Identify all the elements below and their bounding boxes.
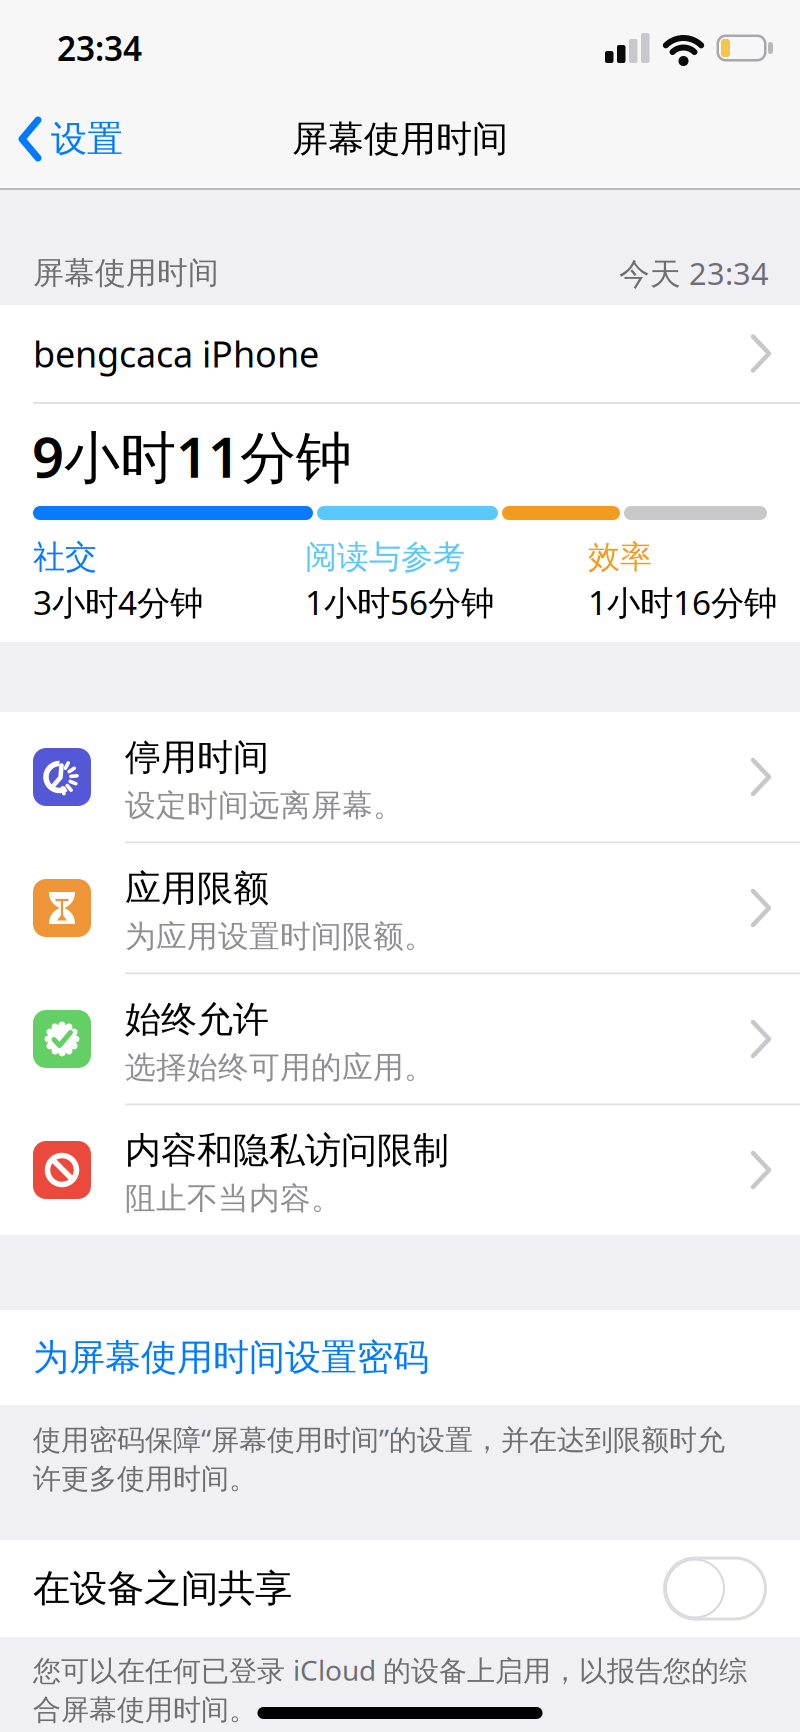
button[interactable]: 内容和隐私访问限制 [0, 1105, 800, 1234]
staticText: 您可以在任何已登录 iCloud 的设备上启用，以报告您的综 [33, 1651, 747, 1689]
staticText: 合屏幕使用时间。 [33, 1693, 257, 1727]
button[interactable]: 停用时间 [0, 712, 800, 841]
staticText: 为应用设置时间限额。 [125, 918, 435, 955]
button[interactable]: 始终允许 [0, 974, 800, 1103]
staticText: 使用密码保障“屏幕使用时间”的设置，并在达到限额时允 [33, 1420, 725, 1458]
staticText: 1小时56分钟 [305, 580, 494, 624]
staticText: 停用时间 [125, 735, 269, 780]
button[interactable]: 为屏幕使用时间设置密码 [0, 1310, 800, 1405]
staticText: 阅读与参考 [305, 537, 465, 577]
staticText: 今天 23:34 [619, 253, 769, 293]
staticText: 9小时11分钟 [32, 419, 352, 493]
staticText: 设置 [51, 117, 123, 161]
button[interactable]: 应用限额 [0, 843, 800, 972]
staticText: 设定时间远离屏幕。 [125, 787, 404, 824]
staticText: 选择始终可用的应用。 [125, 1049, 435, 1086]
staticText: 1小时16分钟 [588, 580, 777, 624]
button[interactable]: bengcaca iPhone [0, 305, 800, 402]
staticText: 在设备之间共享 [33, 1566, 292, 1611]
staticText: 阻止不当内容。 [125, 1180, 342, 1217]
staticText: 3小时4分钟 [33, 580, 203, 624]
staticText: 应用限额 [125, 866, 269, 911]
staticText: 23:34 [57, 26, 142, 70]
staticText: 内容和隐私访问限制 [125, 1128, 449, 1173]
button[interactable]: 在设备之间共享 [663, 1556, 767, 1620]
staticText: 屏幕使用时间 [292, 117, 508, 161]
staticText: 许更多使用时间。 [33, 1462, 257, 1496]
staticText: 效率 [588, 537, 652, 577]
staticText: bengcaca iPhone [33, 330, 319, 377]
staticText: 始终允许 [125, 997, 269, 1042]
staticText: 为屏幕使用时间设置密码 [33, 1335, 429, 1380]
button[interactable]: 返回设置 [0, 114, 123, 164]
staticText: 屏幕使用时间 [33, 254, 219, 292]
staticText: 社交 [33, 537, 97, 577]
